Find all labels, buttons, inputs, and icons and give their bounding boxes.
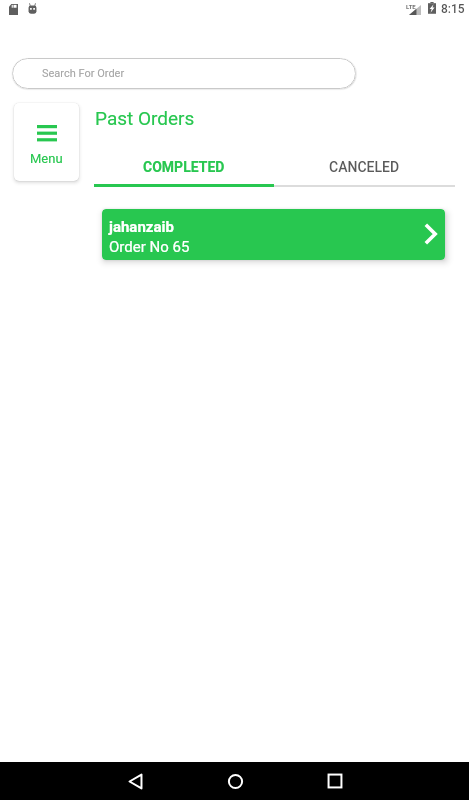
staticText: jahanzaib bbox=[109, 218, 174, 236]
button[interactable]: Recent apps bbox=[285, 762, 385, 800]
staticText: Menu bbox=[30, 151, 63, 166]
button[interactable]: Back bbox=[85, 762, 185, 800]
button[interactable]: Menu bbox=[14, 103, 79, 181]
staticText: COMPLETED bbox=[143, 159, 225, 175]
button[interactable]: COMPLETED bbox=[94, 151, 274, 183]
button[interactable]: Search For Order bbox=[12, 58, 356, 89]
staticText: Search For Order bbox=[42, 67, 125, 80]
button[interactable]: CANCELED bbox=[274, 151, 455, 183]
staticText: Order No 65 bbox=[109, 238, 190, 256]
staticText: Past Orders bbox=[95, 107, 195, 129]
staticText: 8:15 bbox=[441, 2, 465, 16]
button[interactable]: jahanzaib bbox=[102, 209, 445, 260]
staticText: LTE bbox=[406, 3, 416, 10]
staticText: CANCELED bbox=[329, 159, 400, 175]
button[interactable]: Home bbox=[185, 762, 285, 800]
